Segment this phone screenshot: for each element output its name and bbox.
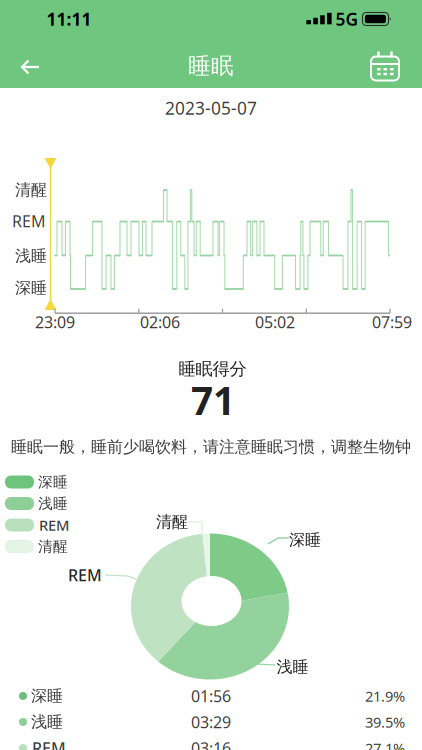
staticText: 浅睡 bbox=[15, 246, 47, 266]
staticText: 71 bbox=[191, 374, 235, 426]
staticText: 23:09 bbox=[35, 311, 75, 333]
staticText: 清醒 bbox=[38, 537, 68, 555]
staticText: 03:16 bbox=[191, 737, 231, 750]
staticText: REM bbox=[68, 564, 102, 586]
staticText: 浅睡 bbox=[38, 494, 68, 512]
staticText: 01:56 bbox=[191, 685, 231, 707]
staticText: 02:06 bbox=[140, 311, 180, 333]
staticText: 39.5% bbox=[365, 712, 405, 732]
button[interactable]: Back bbox=[10, 49, 50, 85]
staticText: 深睡 bbox=[15, 278, 47, 298]
staticText: 21.9% bbox=[365, 686, 405, 706]
staticText: 睡眠一般，睡前少喝饮料，请注意睡眠习惯，调整生物钟 bbox=[11, 437, 411, 457]
staticText: 03:29 bbox=[191, 711, 231, 733]
staticText: 2023-05-07 bbox=[165, 96, 257, 119]
staticText: 深睡 bbox=[289, 530, 321, 550]
staticText: 5G bbox=[335, 7, 358, 30]
staticText: REM bbox=[39, 515, 69, 535]
staticText: 05:02 bbox=[255, 311, 295, 333]
staticText: 睡眠得分 bbox=[178, 358, 246, 380]
staticText: 浅睡 bbox=[31, 712, 63, 732]
staticText: 27.1% bbox=[365, 738, 405, 750]
staticText: 深睡 bbox=[31, 686, 63, 706]
staticText: 浅睡 bbox=[276, 657, 308, 677]
staticText: 11:11 bbox=[46, 7, 91, 30]
staticText: 清醒 bbox=[15, 180, 47, 200]
staticText: 清醒 bbox=[156, 512, 188, 532]
button[interactable]: Calendar bbox=[367, 48, 403, 84]
staticText: 深睡 bbox=[38, 473, 68, 491]
staticText: 07:59 bbox=[372, 311, 412, 333]
staticText: REM bbox=[12, 210, 46, 232]
staticText: 睡眠 bbox=[188, 52, 234, 80]
staticText: REM bbox=[32, 737, 66, 750]
